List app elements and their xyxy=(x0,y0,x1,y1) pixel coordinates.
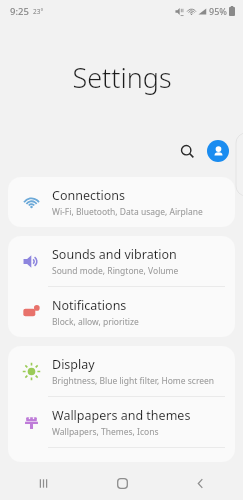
staticText: Wi-Fi, Bluetooth, Data usage, Airplane m… xyxy=(52,206,225,218)
button[interactable]: Connections xyxy=(8,177,235,227)
button[interactable]: Back xyxy=(183,467,217,500)
button[interactable]: Home xyxy=(105,467,139,500)
staticText: 95% xyxy=(209,5,227,17)
staticText: Sounds and vibration xyxy=(52,246,177,263)
button[interactable]: Wallpapers and themes xyxy=(8,397,235,447)
staticText: 23° xyxy=(33,7,44,16)
staticText: Display xyxy=(52,356,95,373)
button[interactable]: Samsung account xyxy=(207,140,229,162)
button[interactable]: Notifications xyxy=(8,287,235,337)
staticText: 9:25 xyxy=(10,5,29,18)
staticText: Settings xyxy=(72,59,172,96)
staticText: Connections xyxy=(52,187,125,204)
staticText: Notifications xyxy=(52,297,127,314)
staticText: Wallpapers, Themes, Icons xyxy=(52,426,159,438)
button[interactable]: Sounds and vibration xyxy=(8,236,235,286)
button[interactable]: Display xyxy=(8,346,235,396)
staticText: Brightness, Blue light filter, Home scre… xyxy=(52,375,215,387)
staticText: Block, allow, prioritize xyxy=(52,316,139,328)
staticText: Sound mode, Ringtone, Volume xyxy=(52,265,179,277)
staticText: Wallpapers and themes xyxy=(52,407,191,424)
button[interactable]: Search settings xyxy=(174,138,200,164)
button[interactable]: Recent apps xyxy=(26,467,60,500)
